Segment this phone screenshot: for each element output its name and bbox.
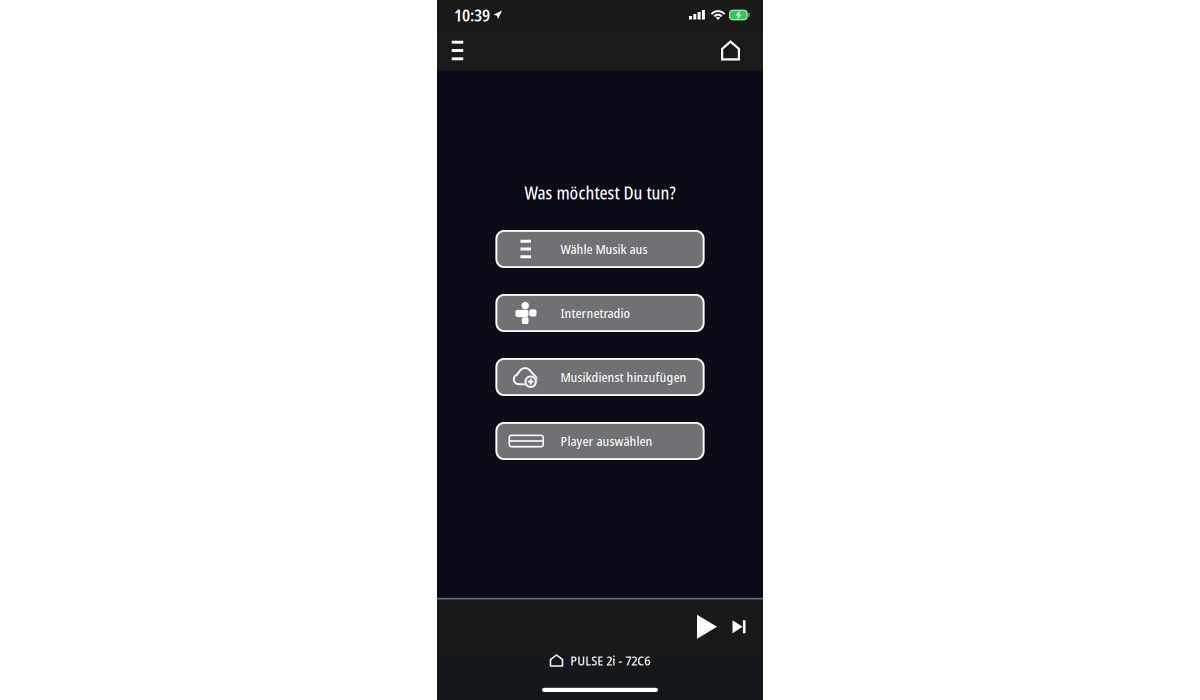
button[interactable]: Next track [722,609,756,645]
staticText: Musikdienst hinzufügen [560,368,686,386]
button[interactable]: Wähle Musik aus [495,230,704,268]
staticText: Player auswählen [560,432,652,450]
staticText: 10:39 [454,4,490,26]
button[interactable]: Home [715,30,746,71]
staticText: Was möchtest Du tun? [524,181,675,205]
button[interactable]: Play [692,609,722,645]
button[interactable]: Player auswählen [495,422,704,460]
staticText: Wähle Musik aus [560,240,647,258]
button[interactable]: PULSE 2i - 72C6 [437,654,763,667]
staticText: PULSE 2i - 72C6 [570,651,650,669]
button[interactable]: Internetradio [495,294,704,332]
button[interactable]: Menu [442,30,473,71]
staticText: Internetradio [560,304,630,322]
button[interactable]: Musikdienst hinzufügen [495,358,704,396]
